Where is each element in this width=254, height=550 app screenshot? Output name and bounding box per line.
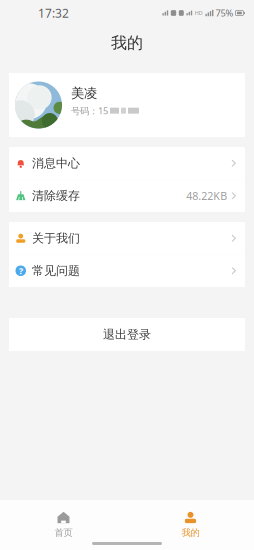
- button[interactable]: 首页: [0, 500, 127, 537]
- staticText: 我的: [111, 33, 143, 53]
- staticText: 清除缓存: [32, 188, 80, 203]
- staticText: HD: [195, 9, 203, 17]
- staticText: 关于我们: [32, 231, 80, 246]
- staticText: 消息中心: [32, 156, 80, 171]
- button[interactable]: 我的: [127, 500, 254, 537]
- staticText: ?: [19, 265, 23, 277]
- button[interactable]: ?: [9, 254, 245, 287]
- button[interactable]: 清除缓存: [9, 179, 245, 212]
- staticText: 48.22KB: [186, 189, 227, 203]
- staticText: 17:32: [38, 5, 69, 21]
- staticText: 美凌: [71, 85, 97, 101]
- staticText: 号码：15: [71, 104, 108, 117]
- button[interactable]: 退出登录: [9, 318, 245, 351]
- staticText: 首页: [54, 527, 72, 538]
- staticText: 常见问题: [32, 263, 80, 278]
- staticText: 75%: [215, 7, 233, 19]
- staticText: 退出登录: [103, 327, 151, 342]
- button[interactable]: 关于我们: [9, 222, 245, 254]
- button[interactable]: 美凌: [9, 73, 245, 137]
- staticText: 我的: [181, 527, 199, 538]
- button[interactable]: 消息中心: [9, 147, 245, 179]
